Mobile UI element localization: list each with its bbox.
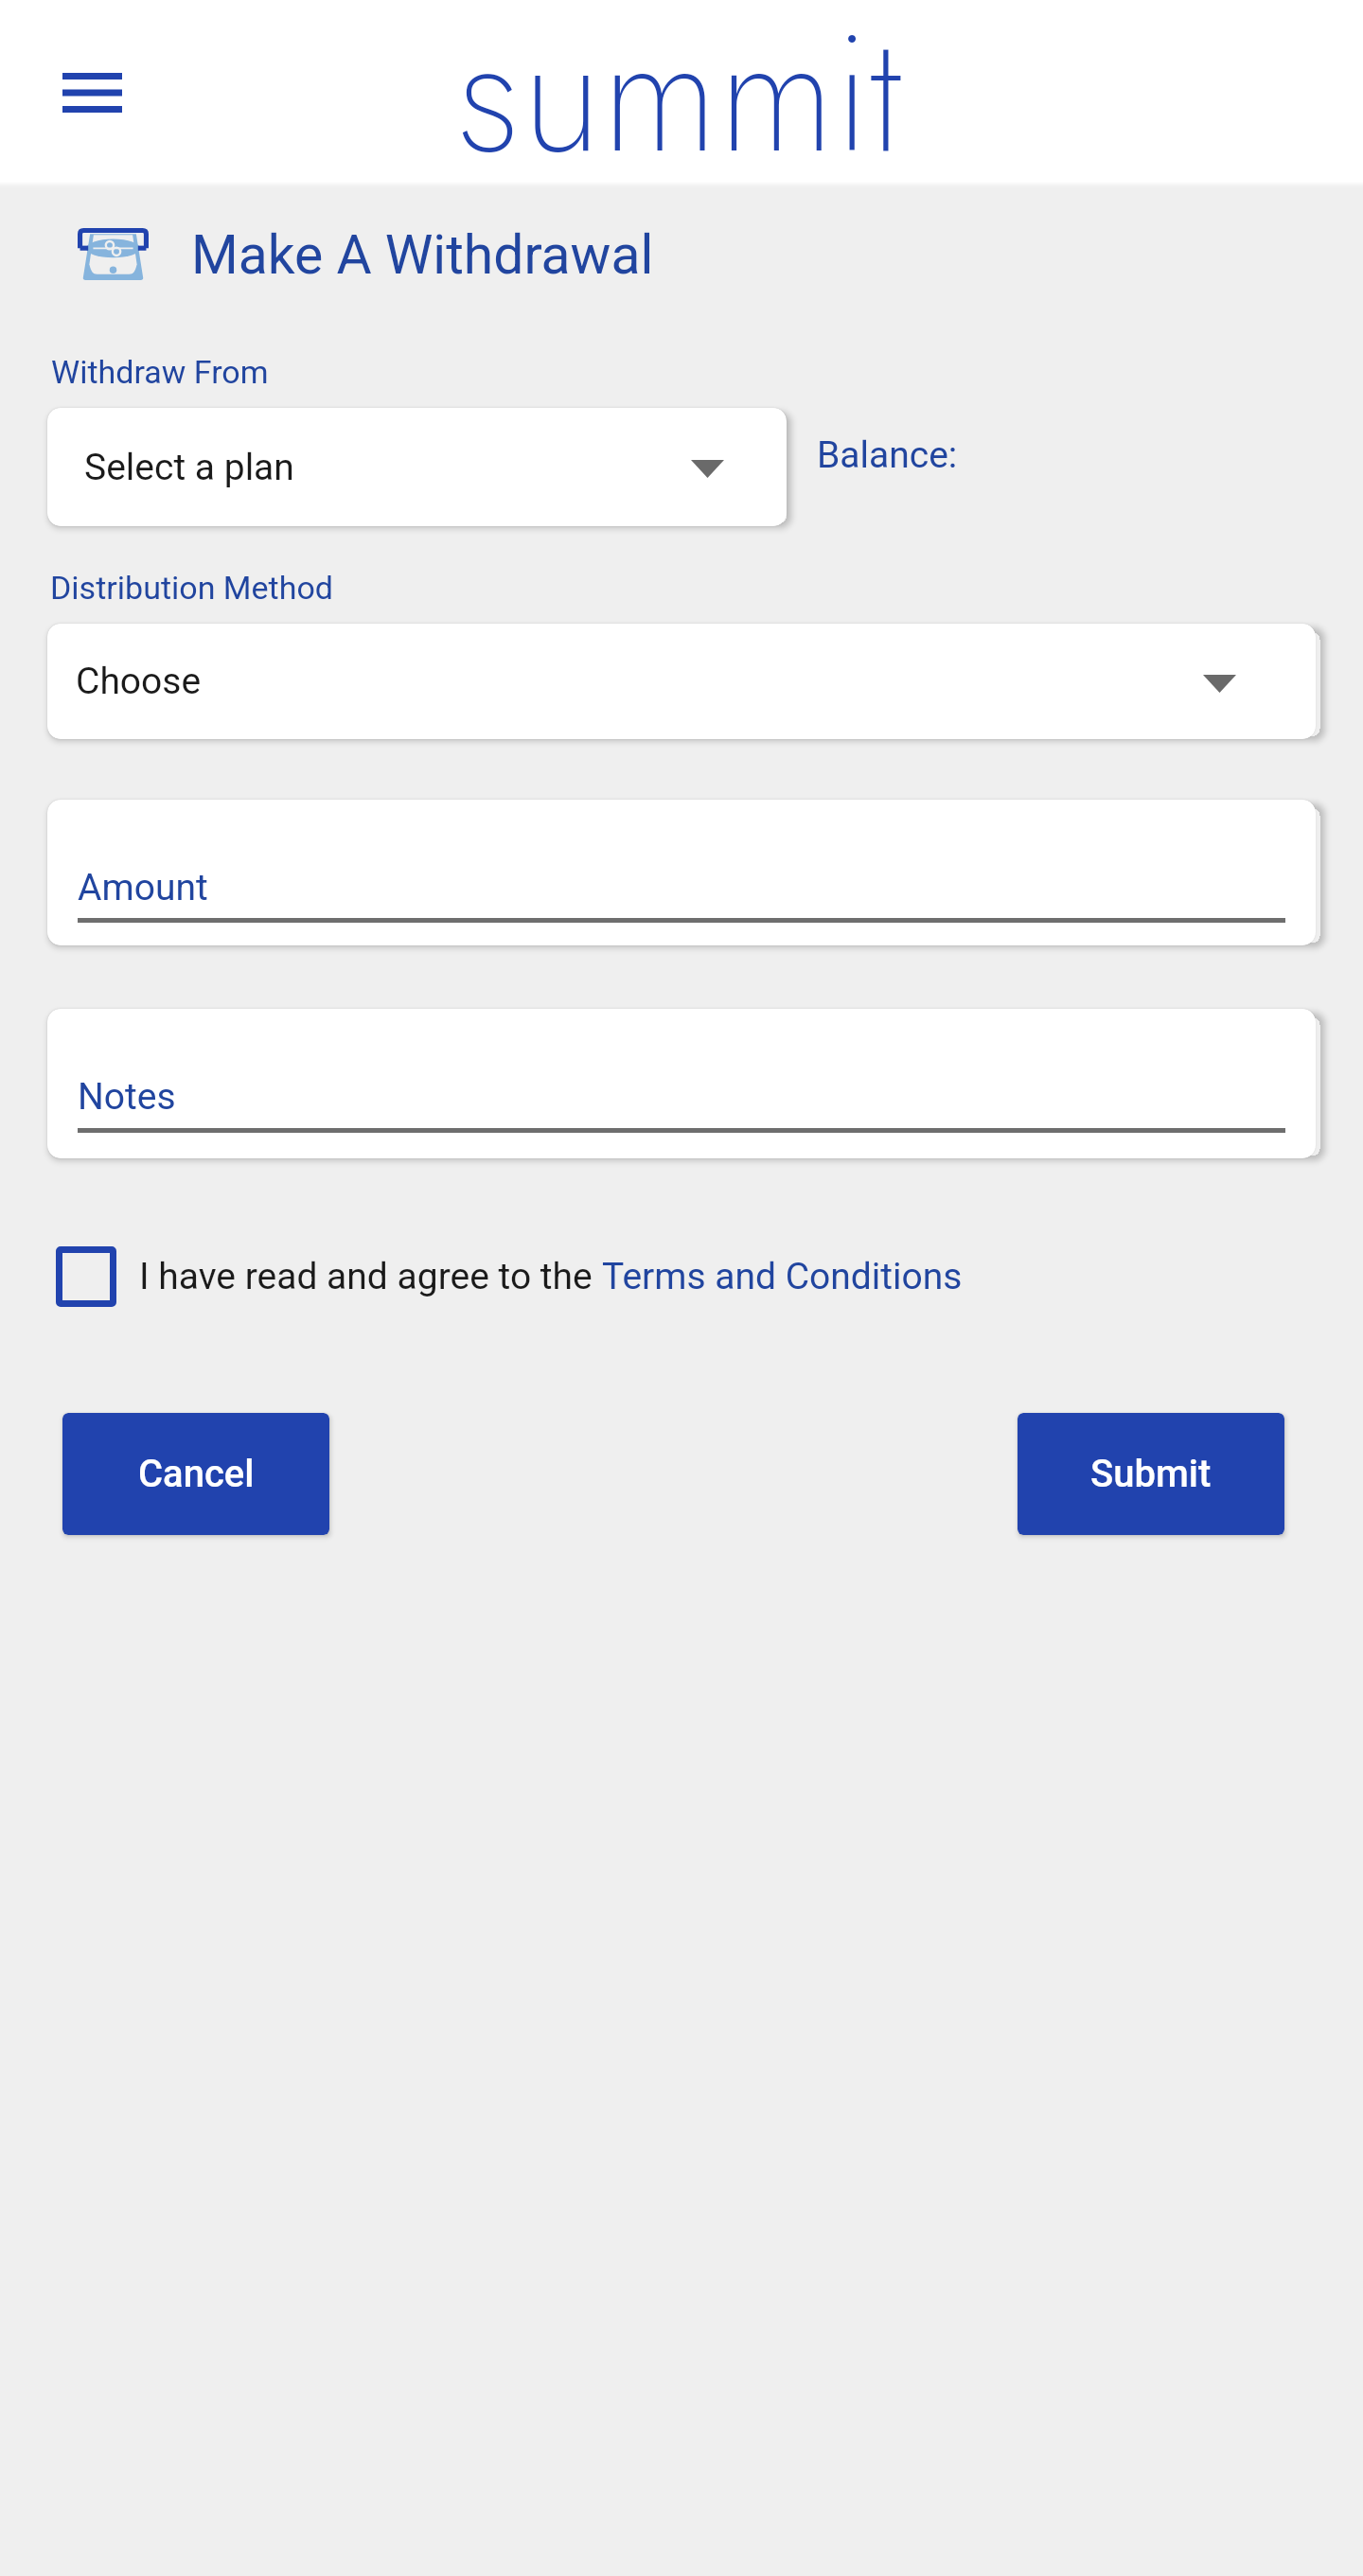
staticText: Distribution Method bbox=[50, 569, 333, 607]
staticText: Cancel bbox=[138, 1452, 255, 1496]
button[interactable]: Submit bbox=[1018, 1413, 1284, 1535]
staticText: Submit bbox=[1090, 1452, 1212, 1496]
staticText: Select a plan bbox=[84, 446, 294, 489]
staticText: Notes bbox=[78, 1075, 176, 1119]
button[interactable]: I have read and agree to the bbox=[45, 1235, 963, 1318]
staticText: Make A Withdrawal bbox=[191, 223, 654, 287]
staticText: Balance: bbox=[817, 433, 958, 477]
staticText: summit bbox=[456, 0, 903, 158]
staticText: I have read and agree to the bbox=[139, 1255, 602, 1298]
button[interactable]: Amount bbox=[47, 800, 1316, 945]
staticText: Choose bbox=[76, 660, 202, 703]
staticText: Amount bbox=[78, 866, 208, 909]
staticText: Terms and Conditions bbox=[602, 1255, 963, 1298]
button[interactable]: Cancel bbox=[62, 1413, 329, 1535]
staticText: Withdraw From bbox=[51, 353, 269, 391]
button[interactable]: Choose bbox=[47, 624, 1316, 739]
button[interactable]: Select a plan bbox=[47, 408, 787, 526]
button[interactable]: Notes bbox=[47, 1009, 1316, 1158]
button[interactable]: Open navigation menu bbox=[28, 39, 156, 147]
